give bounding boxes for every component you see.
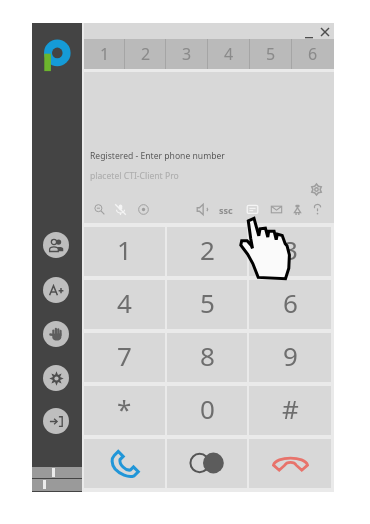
staticText: 7 [117,338,132,373]
staticText: 2 [200,232,215,267]
button[interactable]: 2 [125,39,166,69]
button[interactable]: ssc [215,202,237,218]
staticText: 0 [200,391,215,426]
staticText: 6 [283,285,298,320]
button[interactable]: Contacts [43,232,69,258]
button[interactable]: 1 [84,39,125,69]
button[interactable]: Call [84,439,165,488]
button[interactable]: 5 [250,39,292,69]
button[interactable]: Settings [43,365,69,391]
button[interactable]: Mute [112,201,128,217]
button[interactable]: 1 [84,227,165,276]
button[interactable]: Transfer [167,439,247,488]
staticText: ssc [219,204,233,216]
button[interactable]: Speaker volume [32,467,82,478]
button[interactable]: Do not disturb [43,321,69,347]
staticText: * [117,391,132,426]
staticText: 1 [100,43,110,65]
button[interactable]: Speaker [194,201,210,217]
staticText: 6 [308,43,318,65]
staticText: # [282,391,299,426]
button[interactable]: 4 [84,280,165,329]
button[interactable]: Record [135,201,151,217]
staticText: Registered - Enter phone number [90,150,225,162]
button[interactable]: Help [309,201,325,217]
button[interactable]: Settings [308,181,324,197]
button[interactable]: 8 [167,333,247,382]
staticText: 4 [117,285,132,320]
staticText: 3 [283,232,298,267]
staticText: 8 [200,338,215,373]
button[interactable]: 7 [84,333,165,382]
button[interactable]: 3 [166,39,208,69]
staticText: 5 [200,285,215,320]
staticText: 5 [266,43,276,65]
button[interactable]: Zoom out [91,201,107,217]
button[interactable]: 0 [167,386,247,435]
staticText: 9 [283,338,298,373]
staticText: placetel CTI-Client Pro [90,170,179,182]
button[interactable]: Microphone volume [32,479,82,491]
button[interactable]: 5 [167,280,247,329]
button[interactable]: Text size [43,277,69,303]
staticText: 1 [117,232,132,267]
button[interactable]: 4 [208,39,250,69]
button[interactable]: 2 [167,227,247,276]
staticText: 2 [141,43,151,65]
button[interactable]: Log out [43,408,69,434]
button[interactable]: Mail [268,201,284,217]
button[interactable]: 9 [249,333,331,382]
button[interactable]: Presence [289,201,305,217]
button[interactable]: Notes [244,201,260,217]
button[interactable]: # [249,386,331,435]
button[interactable]: 6 [292,39,334,69]
button[interactable]: * [84,386,165,435]
button[interactable]: 3 [249,227,331,276]
staticText: 3 [182,43,192,65]
button[interactable]: 6 [249,280,331,329]
staticText: 4 [224,43,234,65]
button[interactable]: Minimize [301,23,317,39]
button[interactable]: Close [317,23,333,39]
button[interactable]: Hang up [249,439,331,488]
